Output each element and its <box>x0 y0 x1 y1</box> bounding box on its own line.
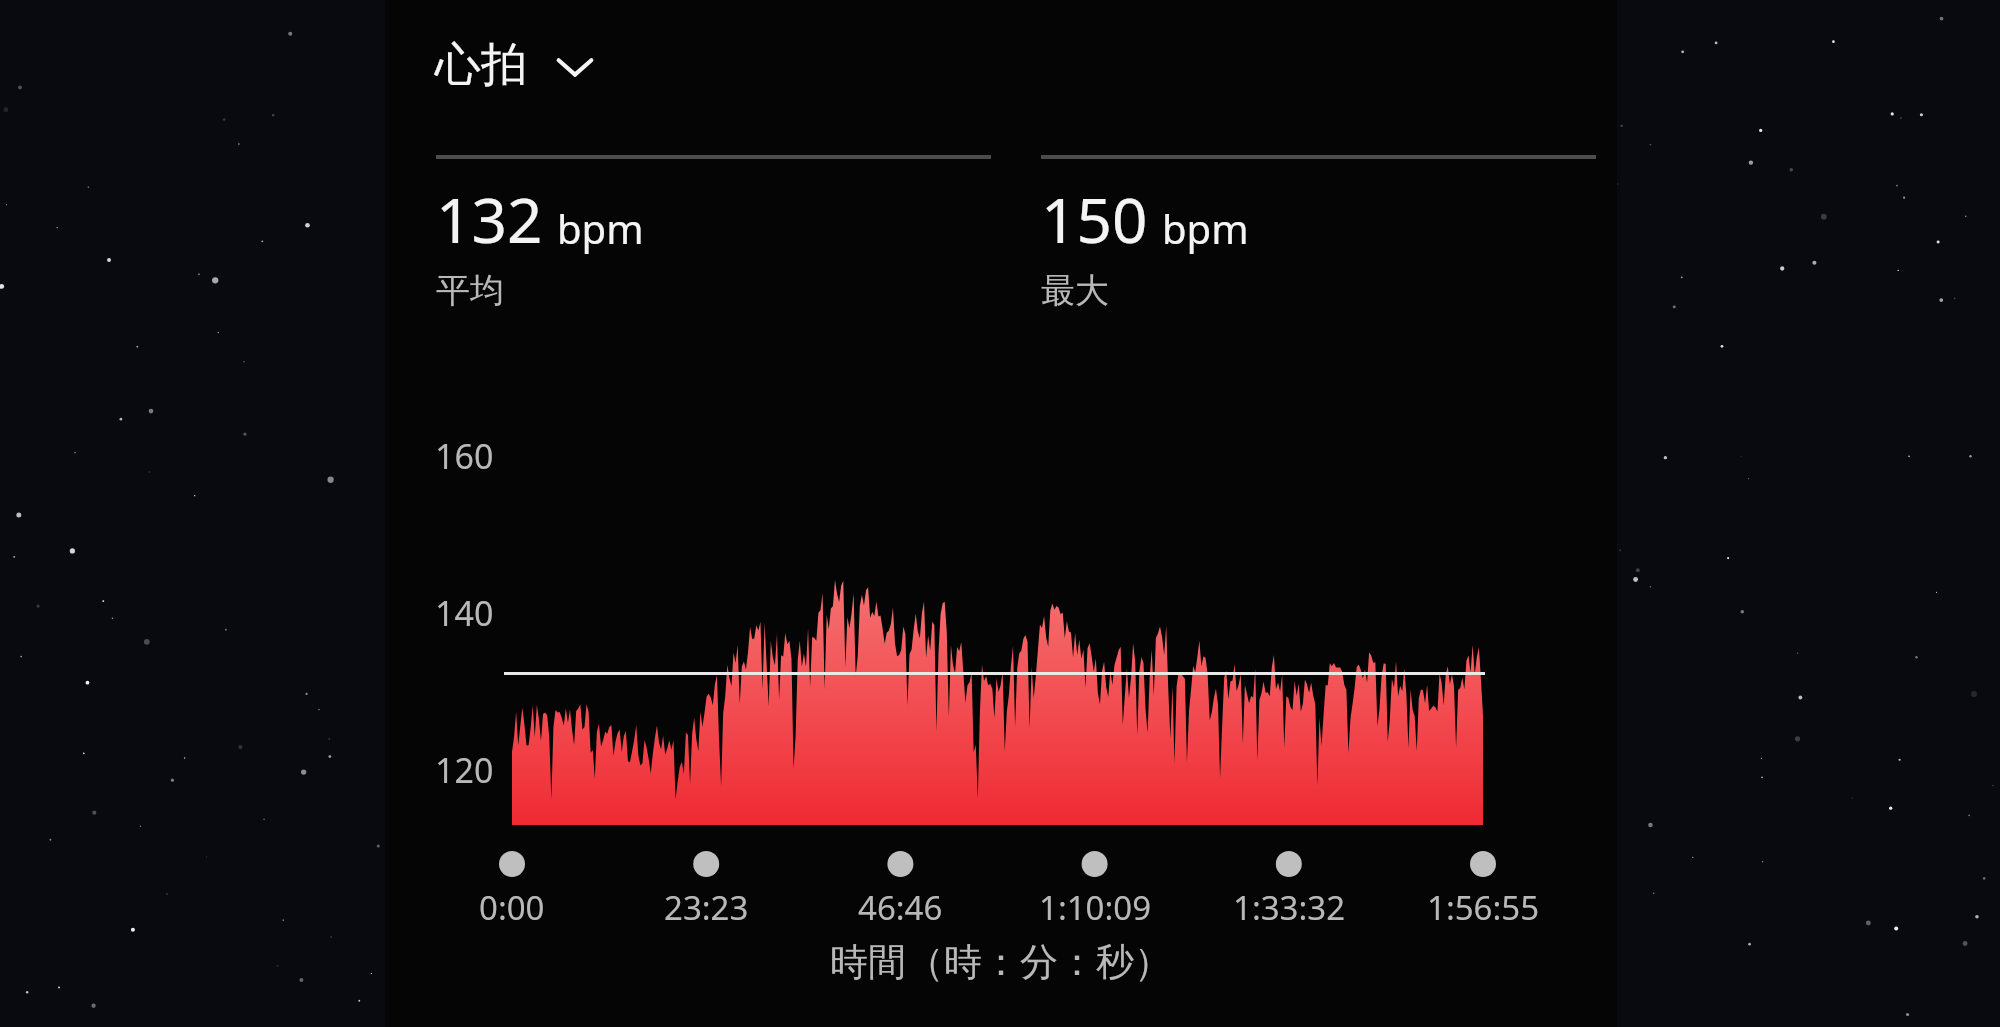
staticText: 23:23 <box>664 885 749 930</box>
staticText: 1:10:09 <box>1039 885 1152 930</box>
button[interactable]: 132 <box>436 155 991 312</box>
staticText: 0:00 <box>479 885 545 930</box>
staticText: 160 <box>435 433 494 479</box>
staticText: 132 <box>436 177 543 261</box>
staticText: 1:33:32 <box>1233 885 1346 930</box>
button[interactable]: 心拍 <box>435 36 599 94</box>
staticText: 120 <box>435 747 494 793</box>
staticText: 46:46 <box>858 885 943 930</box>
staticText: 1:56:55 <box>1427 885 1540 930</box>
staticText: 最大 <box>1041 269 1109 312</box>
staticText: bpm <box>557 201 644 255</box>
staticText: 140 <box>435 590 494 636</box>
staticText: bpm <box>1162 201 1249 255</box>
staticText: 時間（時：分：秒） <box>830 938 1172 986</box>
button[interactable]: 150 <box>1041 155 1596 312</box>
other: Expand heart rate <box>551 41 599 89</box>
staticText: 平均 <box>436 269 504 312</box>
staticText: 心拍 <box>435 36 527 94</box>
staticText: 150 <box>1041 177 1148 261</box>
